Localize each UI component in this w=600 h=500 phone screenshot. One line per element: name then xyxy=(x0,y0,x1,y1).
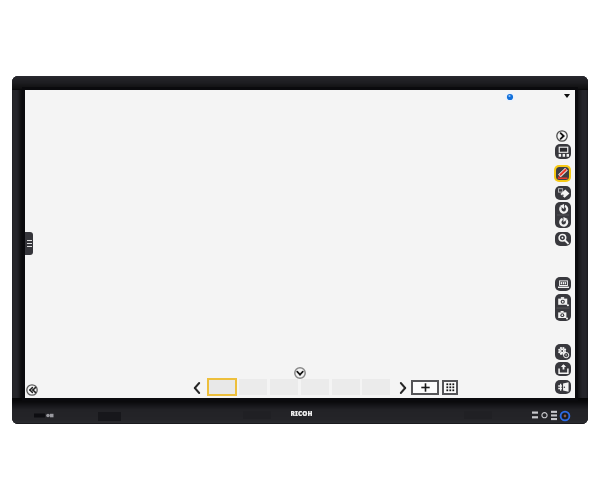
button[interactable]: Page 1 xyxy=(207,378,237,396)
button[interactable]: Exit xyxy=(555,380,571,394)
button[interactable]: Zoom xyxy=(555,232,571,246)
button[interactable]: Next page xyxy=(395,379,410,397)
button[interactable]: Capture area xyxy=(555,308,571,321)
button[interactable]: Open tool drawer xyxy=(25,232,33,255)
button[interactable]: Capture screen xyxy=(555,294,571,308)
button[interactable]: Calculator xyxy=(555,144,571,159)
button[interactable]: Screen share xyxy=(555,277,571,291)
button[interactable]: Redo xyxy=(555,215,571,228)
button[interactable]: Menu xyxy=(561,90,573,102)
button[interactable]: Add page xyxy=(411,380,439,395)
button[interactable]: Collapse toolbar xyxy=(25,383,39,397)
button[interactable]: Expand toolbar xyxy=(555,129,569,143)
button[interactable]: Show page list xyxy=(293,366,306,379)
button[interactable]: Previous page xyxy=(189,379,204,397)
button[interactable]: Settings xyxy=(555,344,571,360)
staticText: RICOH xyxy=(290,409,313,418)
button[interactable]: Save xyxy=(555,362,571,376)
button[interactable]: Eraser xyxy=(555,186,571,200)
button[interactable]: Page overview xyxy=(442,380,458,395)
button[interactable]: Pen xyxy=(556,167,569,180)
button[interactable]: Undo xyxy=(555,202,571,215)
button[interactable]: Power xyxy=(559,410,570,421)
